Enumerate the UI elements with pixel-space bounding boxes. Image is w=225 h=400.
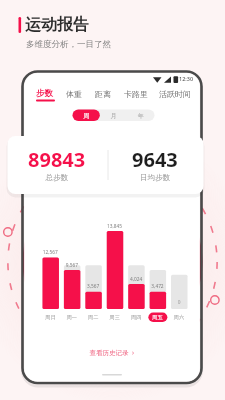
- button[interactable]: 月: [100, 109, 127, 121]
- button[interactable]: 距离: [92, 84, 117, 102]
- button[interactable]: 卡路里: [120, 84, 153, 102]
- button[interactable]: 周四: [126, 225, 147, 325]
- button[interactable]: 日均步数 9643: [109, 136, 203, 194]
- button[interactable]: 体重: [63, 84, 88, 102]
- button[interactable]: 周二: [83, 225, 104, 325]
- button[interactable]: 周: [73, 109, 100, 121]
- button[interactable]: 步数: [33, 84, 58, 102]
- button[interactable]: 活跃时间: [156, 84, 198, 102]
- button[interactable]: 周五: [147, 225, 168, 325]
- button[interactable]: 周三: [104, 225, 125, 325]
- button[interactable]: 查看历史记录: [78, 342, 148, 358]
- button[interactable]: 周一: [61, 225, 82, 325]
- button[interactable]: 年: [127, 109, 154, 121]
- button[interactable]: 周日: [40, 225, 61, 325]
- button[interactable]: 运动报告: [18, 14, 108, 38]
- button[interactable]: 总步数 89843: [8, 136, 107, 194]
- button[interactable]: 周六: [169, 225, 190, 325]
